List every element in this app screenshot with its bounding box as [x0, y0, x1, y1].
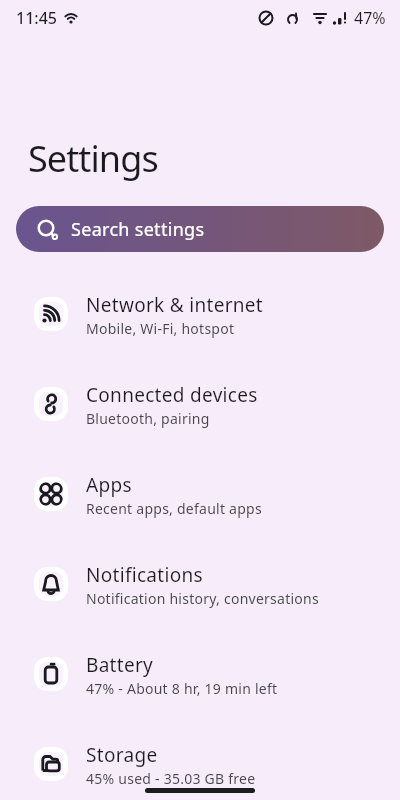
- staticText: 47% - About 8 hr, 19 min left: [86, 679, 278, 698]
- staticText: Settings: [28, 134, 158, 183]
- button[interactable]: Connected devices: [0, 359, 400, 449]
- staticText: Network & internet: [86, 292, 264, 318]
- button[interactable]: Network & internet: [0, 269, 400, 359]
- staticText: Search settings: [71, 217, 205, 242]
- button[interactable]: Search settings: [16, 206, 384, 252]
- staticText: Notifications: [86, 562, 203, 588]
- staticText: Storage: [86, 742, 158, 768]
- button[interactable]: Apps: [0, 449, 400, 539]
- staticText: 45% used - 35.03 GB free: [86, 769, 256, 788]
- staticText: Battery: [86, 652, 154, 678]
- staticText: Recent apps, default apps: [86, 499, 262, 518]
- staticText: Bluetooth, pairing: [86, 409, 210, 428]
- staticText: 47%: [354, 7, 386, 29]
- staticText: 11:45: [16, 7, 57, 29]
- staticText: Apps: [86, 472, 132, 498]
- staticText: Notification history, conversations: [86, 589, 319, 608]
- staticText: Connected devices: [86, 382, 258, 408]
- button[interactable]: Storage: [0, 719, 400, 800]
- button[interactable]: Battery: [0, 629, 400, 719]
- button[interactable]: Notifications: [0, 539, 400, 629]
- staticText: Mobile, Wi-Fi, hotspot: [86, 319, 235, 338]
